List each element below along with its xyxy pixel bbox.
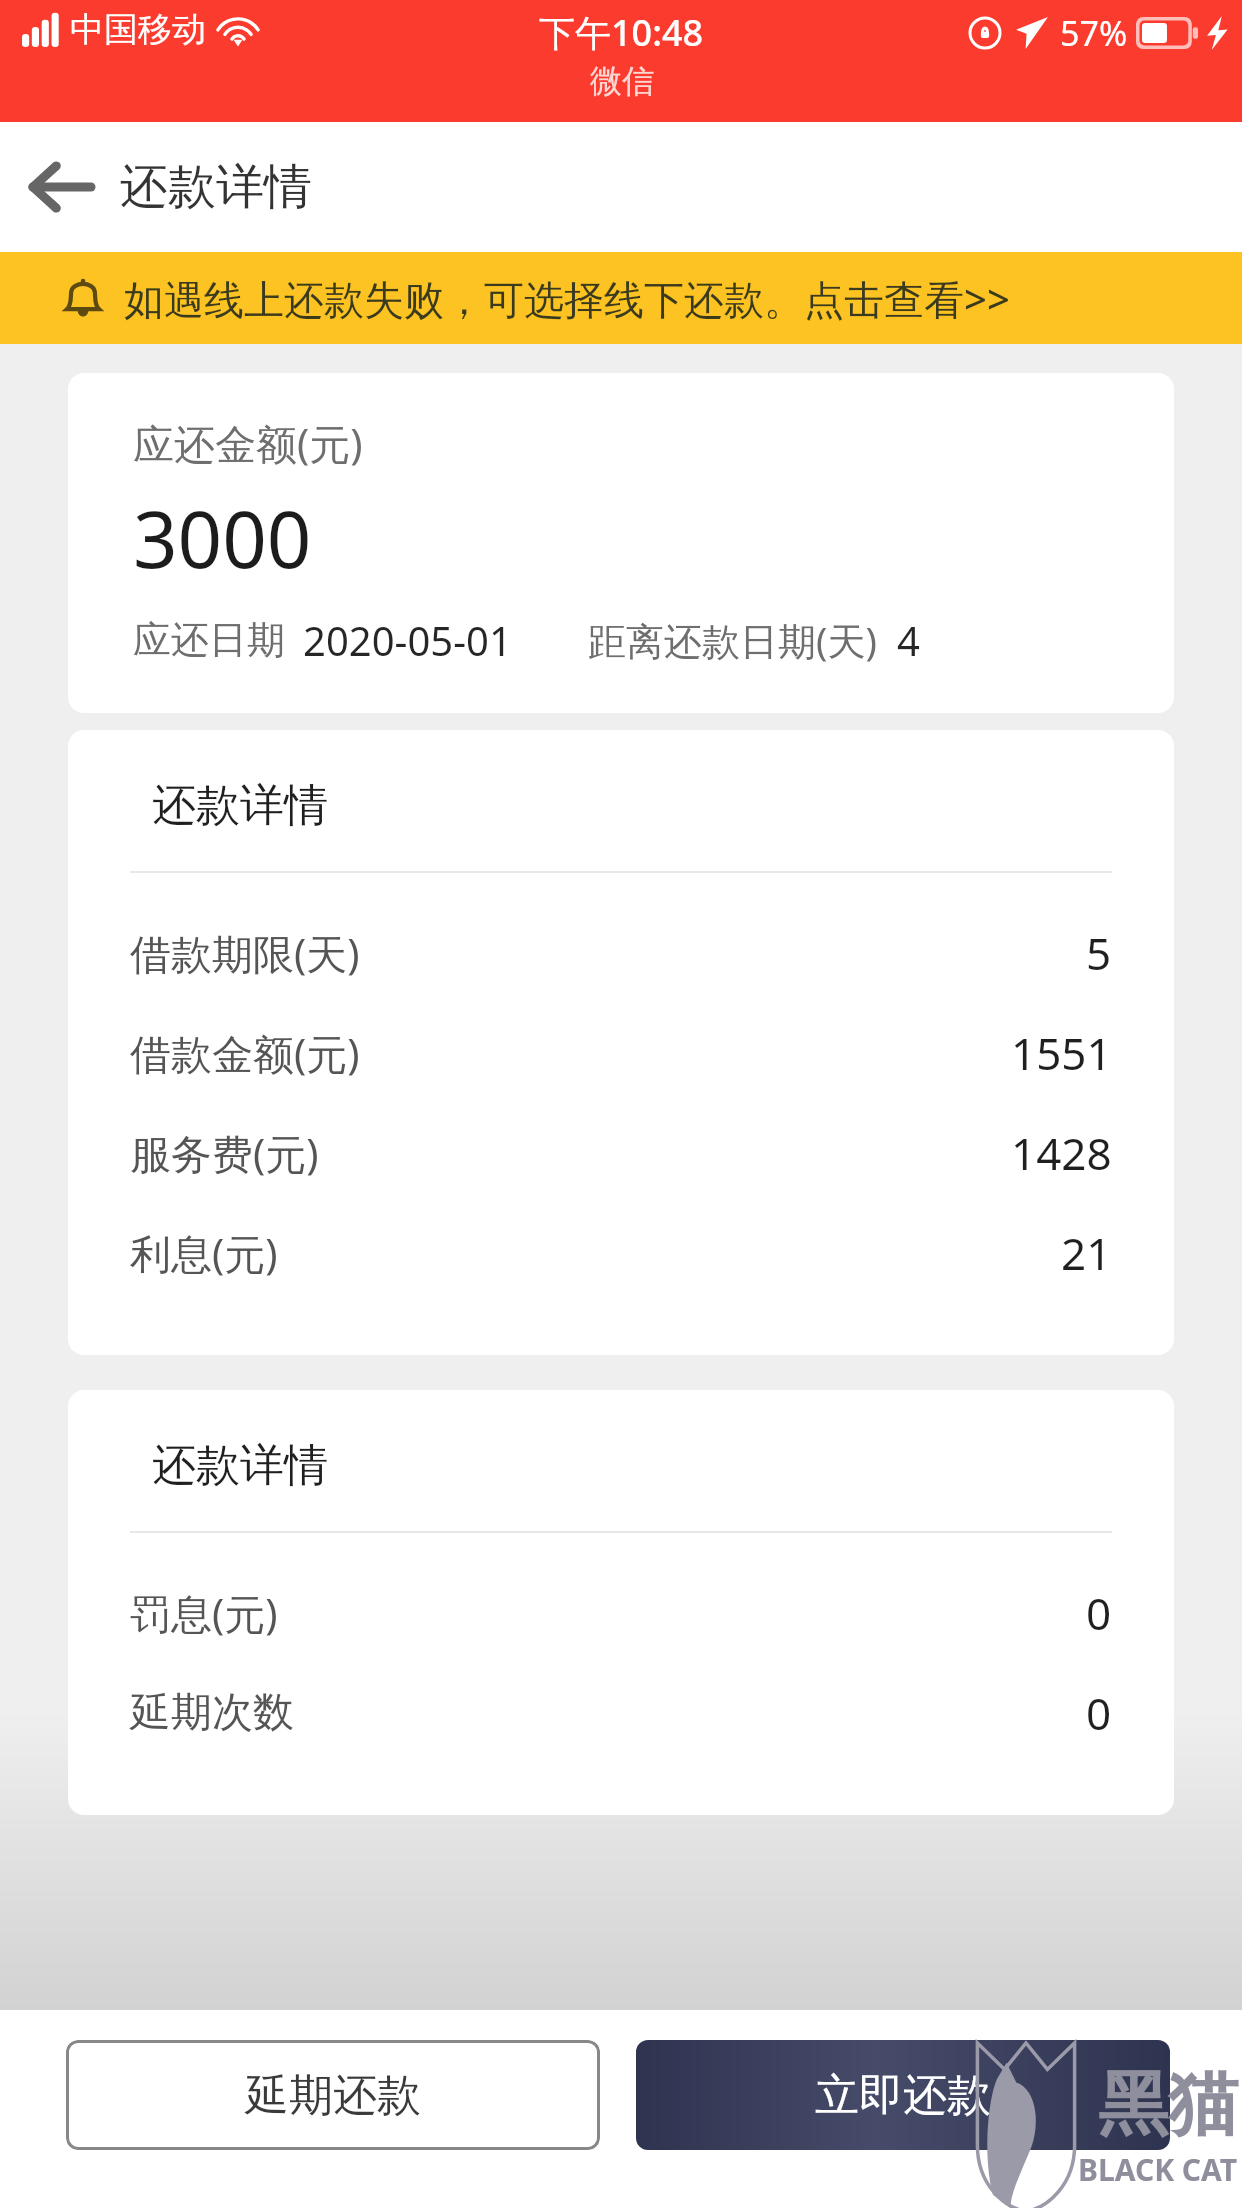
staticText: 0 <box>1086 1683 1112 1743</box>
staticText: BLACK CAT <box>1078 2149 1238 2190</box>
staticText: 下午10:48 <box>539 8 704 57</box>
staticText: 距离还款日期(天) <box>588 614 877 666</box>
staticText: 借款期限(天) <box>130 925 360 981</box>
staticText: 21 <box>1061 1223 1112 1283</box>
staticText: 中国移动 <box>70 8 206 51</box>
staticText: 0 <box>1086 1583 1112 1643</box>
staticText: 5 <box>1086 923 1112 983</box>
staticText: 3000 <box>133 485 312 591</box>
staticText: 延期次数 <box>130 1687 294 1739</box>
staticText: 还款详情 <box>152 778 328 833</box>
staticText: 4 <box>897 613 920 667</box>
staticText: 1428 <box>1011 1123 1112 1183</box>
staticText: 微信 <box>590 61 654 101</box>
staticText: 应还日期 <box>133 616 285 664</box>
staticText: 黑猫 <box>1098 2061 1238 2149</box>
staticText: 立即还款 <box>815 2068 991 2123</box>
button[interactable]: 返回 <box>0 122 120 252</box>
button[interactable]: 立即还款 <box>636 2040 1170 2150</box>
staticText: 如遇线上还款失败，可选择线下还款。点击查看>> <box>124 271 1010 326</box>
staticText: 57% <box>1060 10 1128 56</box>
staticText: 还款详情 <box>152 1438 328 1493</box>
staticText: 应还金额(元) <box>133 415 363 471</box>
staticText: 2020-05-01 <box>303 613 512 667</box>
button[interactable]: 延期还款 <box>66 2040 600 2150</box>
staticText: 1551 <box>1011 1023 1112 1083</box>
staticText: 利息(元) <box>130 1225 278 1281</box>
staticText: 借款金额(元) <box>130 1025 360 1081</box>
staticText: 延期还款 <box>245 2068 421 2123</box>
button[interactable]: 如遇线上还款失败，可选择线下还款。点击查看>> <box>0 252 1242 344</box>
staticText: 罚息(元) <box>130 1585 278 1641</box>
staticText: 还款详情 <box>120 157 312 217</box>
staticText: 服务费(元) <box>130 1125 319 1181</box>
